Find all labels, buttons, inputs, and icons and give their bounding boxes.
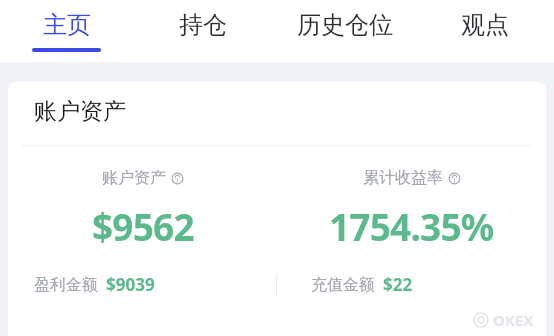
staticText: 充值金额	[311, 275, 375, 295]
button[interactable]: 主页	[0, 0, 132, 62]
staticText: 1754.35%	[329, 201, 494, 251]
button[interactable]: 历史仓位	[274, 0, 415, 62]
button[interactable]: 充值金额	[311, 273, 413, 296]
staticText: 观点	[461, 10, 509, 40]
button[interactable]: 账户资产	[8, 168, 277, 251]
staticText: 账户资产	[34, 97, 126, 126]
button[interactable]: 账户资产	[8, 82, 546, 336]
staticText: 历史仓位	[297, 10, 393, 40]
other: 说明	[171, 172, 184, 185]
staticText: 累计收益率	[363, 168, 443, 188]
staticText: 账户资产	[102, 168, 166, 188]
staticText: $9562	[92, 201, 194, 251]
staticText: $9039	[106, 273, 155, 296]
staticText: $22	[383, 273, 413, 296]
button[interactable]: 持仓	[132, 0, 274, 62]
button[interactable]: 盈利金额	[34, 273, 155, 296]
staticText: 盈利金额	[34, 275, 98, 295]
staticText: OKEX	[493, 310, 534, 330]
other: 说明	[448, 172, 461, 185]
button[interactable]: 观点	[415, 0, 554, 62]
staticText: 持仓	[179, 10, 227, 40]
button[interactable]: 累计收益率	[277, 168, 546, 251]
staticText: 主页	[43, 10, 91, 40]
